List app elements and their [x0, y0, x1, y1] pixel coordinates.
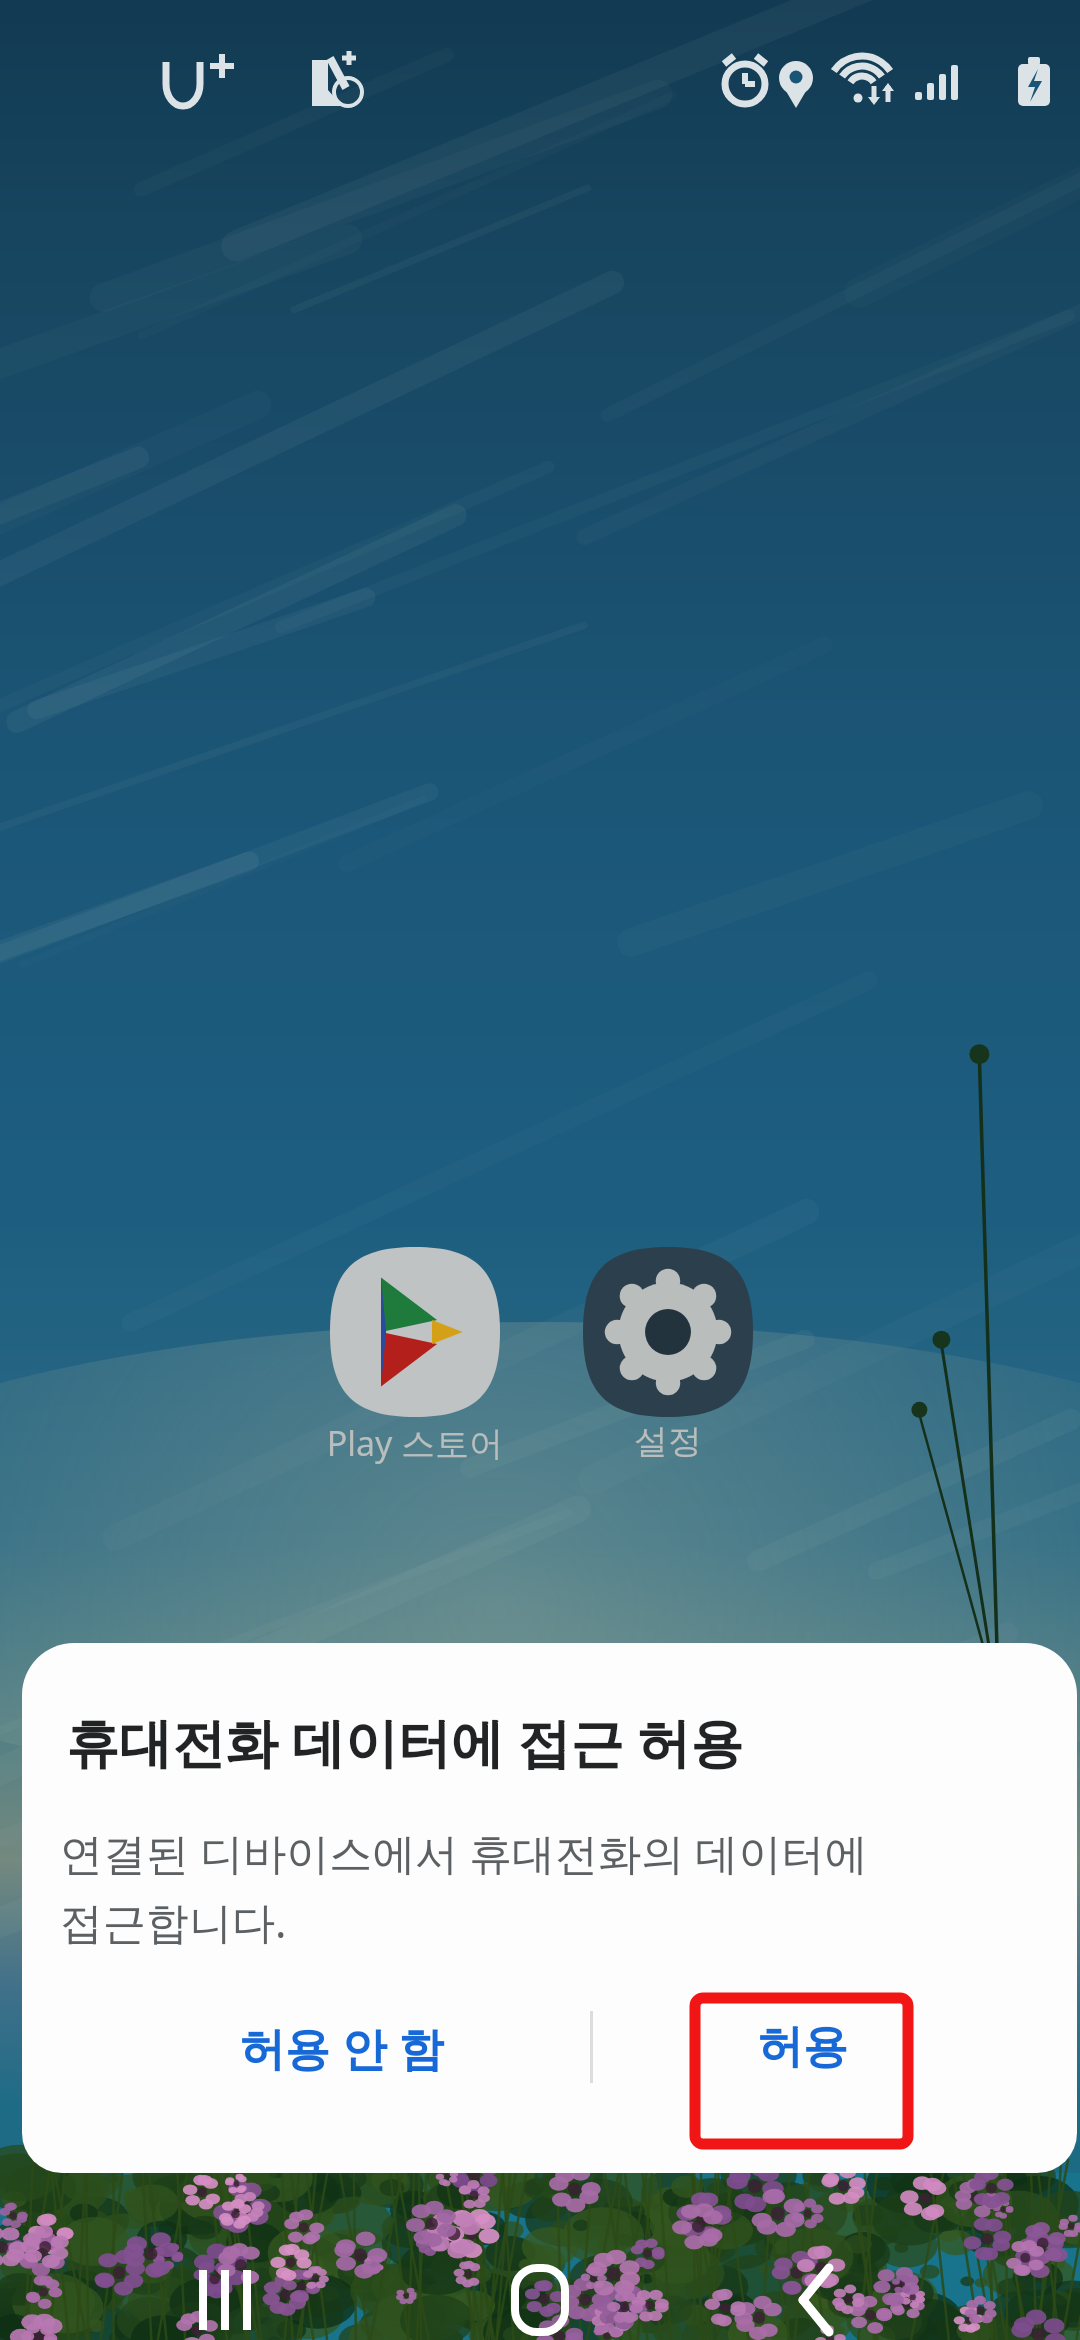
staticText: 허용 [758, 2019, 848, 2076]
staticText: Play 스토어 [300, 1420, 530, 1466]
button[interactable]: 허용 안 함 [172, 1983, 512, 2111]
button[interactable]: Back [740, 2225, 890, 2340]
staticText: 설정 [583, 1420, 753, 1463]
button[interactable]: Home [465, 2225, 615, 2340]
button[interactable]: 허용 [698, 1983, 908, 2111]
staticText: 휴대전화 데이터에 접근 허용 [66, 1705, 744, 1777]
button[interactable]: Play 스토어 [330, 1247, 500, 1417]
button[interactable]: 설정 [583, 1247, 753, 1417]
button[interactable]: Recents [150, 2225, 300, 2340]
staticText: 허용 안 함 [240, 2017, 444, 2078]
staticText: 연결된 디바이스에서 휴대전화의 데이터에 접근합니다. [60, 1823, 868, 1951]
